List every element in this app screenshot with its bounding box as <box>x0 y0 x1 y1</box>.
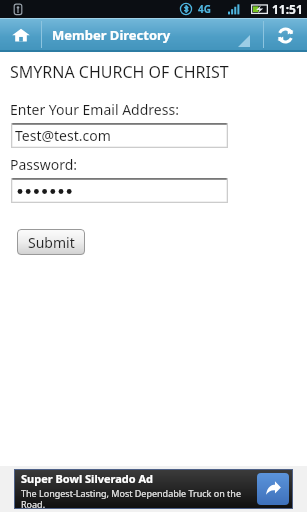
staticText: Member Directory <box>52 26 171 44</box>
staticText: Enter Your Email Address: <box>10 100 179 119</box>
staticText: 4G <box>198 2 211 16</box>
staticText: Submit <box>28 233 75 252</box>
staticText: Super Bowl Silverado Ad <box>21 471 154 486</box>
staticText: The Longest-Lasting, Most Dependable Tru… <box>21 487 241 509</box>
button[interactable]: Open advertisement <box>257 473 289 505</box>
button[interactable]: Test@test.com <box>11 123 228 148</box>
button[interactable]: Super Bowl Silverado Ad <box>14 469 293 509</box>
button[interactable] <box>11 178 228 203</box>
staticText: Test@test.com <box>15 126 111 145</box>
button[interactable]: Refresh <box>263 18 307 52</box>
staticText: SMYRNA CHURCH OF CHRIST <box>10 61 229 83</box>
button[interactable]: Home <box>0 18 41 52</box>
staticText: Password: <box>10 155 78 174</box>
button[interactable]: Submit <box>17 229 85 255</box>
staticText: 11:51 <box>272 1 303 17</box>
